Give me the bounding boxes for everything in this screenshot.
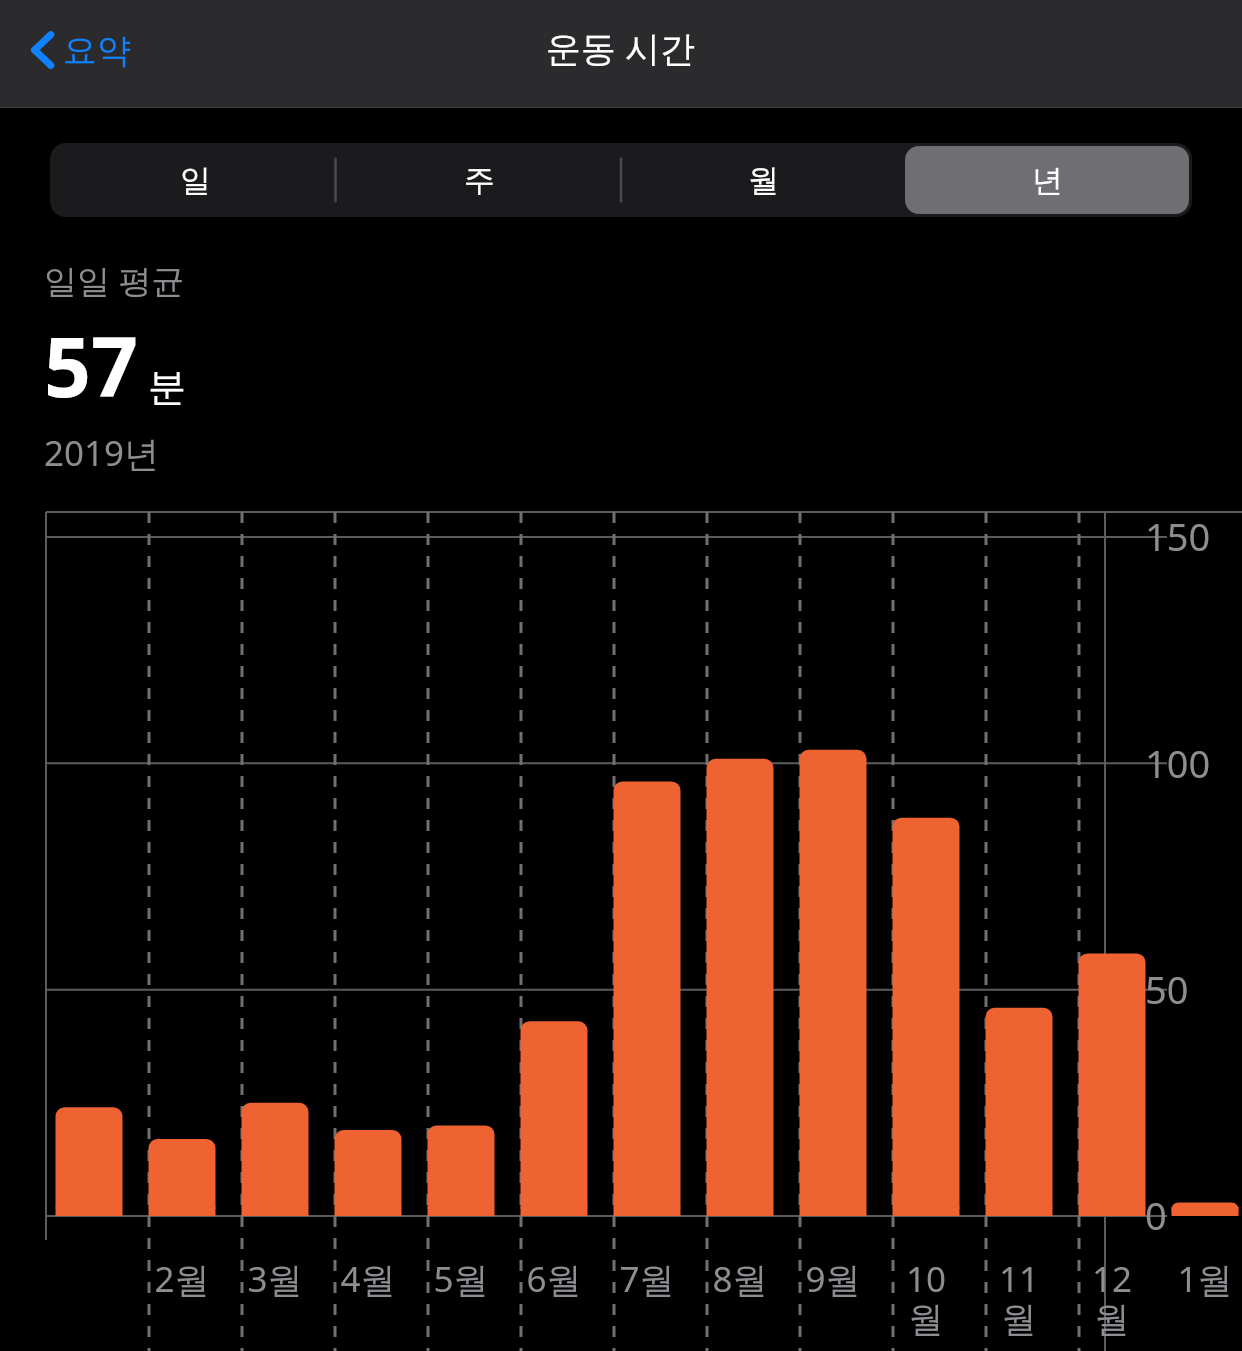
staticText: 5월 [411,1255,511,1303]
staticText: 9월 [783,1255,883,1303]
button[interactable]: 일 [53,146,337,214]
staticText: 100 [1145,737,1211,789]
button[interactable]: 뒤로 [22,18,137,82]
staticText: 일일 평균 [44,258,185,303]
staticText: 2019년 [44,429,160,477]
staticText: 150 [1145,510,1211,562]
staticText: 3월 [225,1255,325,1303]
staticText: 월 [748,161,779,200]
staticText: 운동 시간 [546,24,696,72]
staticText: 57 [44,309,138,421]
staticText: 12 월 [1062,1255,1162,1341]
staticText: 1월 [1155,1255,1242,1303]
staticText: 분 [148,363,186,411]
staticText: 년 [1032,161,1063,200]
staticText: 7월 [597,1255,697,1303]
staticText: 0 [1145,1189,1167,1241]
staticText: 2월 [132,1255,232,1303]
button[interactable]: 주 [337,146,621,214]
staticText: 4월 [318,1255,418,1303]
staticText: 11 월 [969,1255,1069,1341]
other: 뒤로 [28,26,58,74]
staticText: 요약 [63,29,131,72]
staticText: 6월 [504,1255,604,1303]
staticText: 일 [180,161,211,200]
staticText: 8월 [690,1255,790,1303]
staticText: 50 [1145,963,1189,1015]
staticText: 주 [464,161,495,200]
staticText: 10 월 [876,1255,976,1341]
button[interactable]: 년 [905,146,1189,214]
button[interactable]: 월 [621,146,905,214]
